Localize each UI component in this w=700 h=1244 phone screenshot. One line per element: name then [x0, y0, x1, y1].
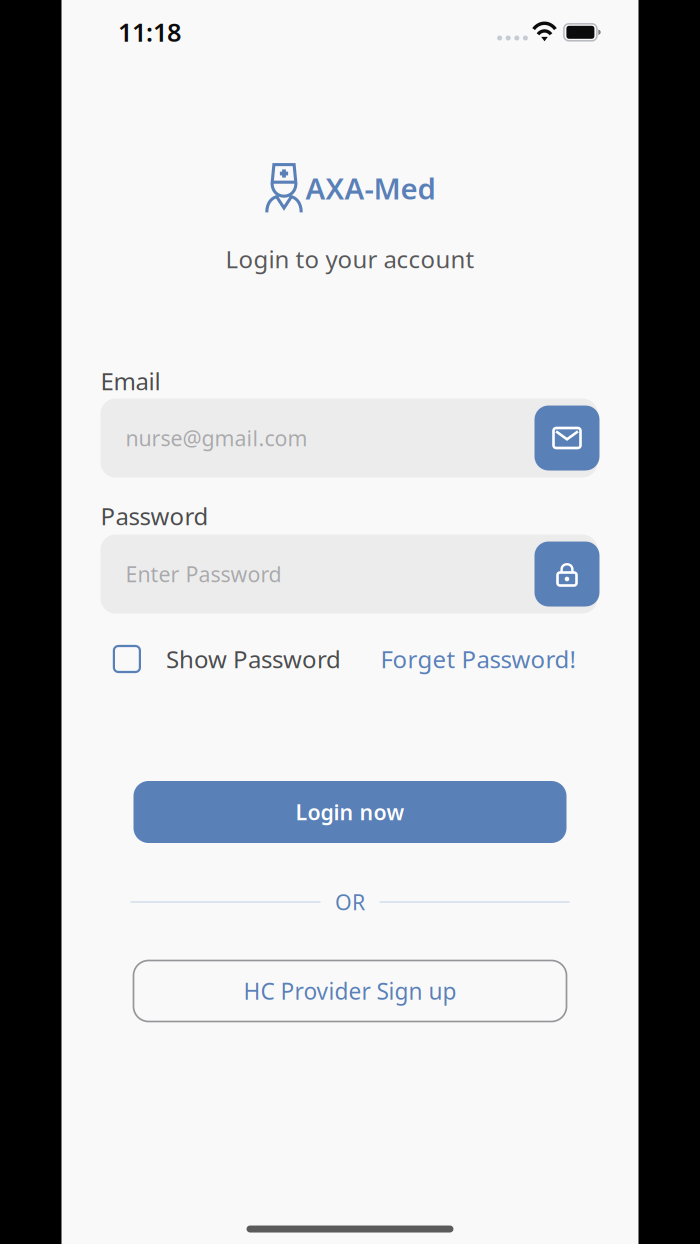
staticText: 11:18 — [118, 15, 181, 49]
button[interactable]: Login now — [133, 781, 566, 843]
button[interactable]: Email — [534, 405, 599, 470]
staticText: Login now — [295, 798, 404, 826]
button[interactable]: HC Provider Sign up — [133, 960, 566, 1021]
button[interactable]: Forget Password! — [380, 642, 585, 676]
staticText: Email — [100, 365, 160, 397]
staticText: HC Provider Sign up — [243, 976, 456, 1006]
staticText: OR — [335, 888, 365, 916]
staticText: Login to your account — [225, 243, 474, 275]
staticText: Show Password — [166, 643, 341, 675]
staticText: nurse@gmail.com — [125, 424, 307, 452]
staticText: AXA-Med — [305, 168, 435, 207]
button[interactable]: Show Password — [114, 642, 341, 676]
staticText: Forget Password! — [380, 643, 575, 675]
staticText: Password — [100, 500, 208, 532]
staticText: Enter Password — [125, 560, 281, 588]
button[interactable]: Password — [534, 541, 599, 606]
